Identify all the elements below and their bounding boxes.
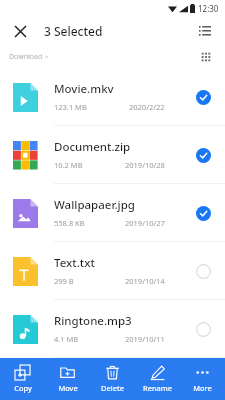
button[interactable]: Delete: [90, 358, 135, 400]
staticText: Text.txt: [54, 255, 95, 271]
button[interactable]: Move: [45, 358, 90, 400]
button[interactable]: Copy: [0, 358, 45, 400]
button[interactable]: Sort: [193, 19, 217, 43]
staticText: Ringtone.mp3: [54, 313, 132, 329]
button[interactable]: Wallpapaer.jpg: [0, 184, 225, 242]
button[interactable]: Close selection: [8, 19, 32, 43]
staticText: Download: [9, 52, 43, 62]
staticText: 123.1 MB: [54, 102, 87, 112]
staticText: 2019/10/11: [125, 334, 165, 344]
staticText: 10.2 MB: [54, 160, 83, 170]
staticText: 2020/2/22: [129, 102, 165, 112]
button[interactable]: Grid view: [195, 46, 217, 68]
staticText: More: [193, 383, 212, 393]
staticText: 299 B: [54, 276, 74, 286]
staticText: 2019/10/28: [125, 160, 165, 170]
button[interactable]: Deselect: [191, 85, 215, 109]
staticText: 2019/10/14: [125, 276, 165, 286]
button[interactable]: Download: [9, 52, 49, 62]
staticText: 4.1 MB: [54, 334, 79, 344]
button[interactable]: Document.zip: [0, 126, 225, 184]
staticText: 2019/10/27: [125, 218, 165, 228]
staticText: 558.8 KB: [54, 218, 85, 228]
button[interactable]: Deselect: [191, 201, 215, 225]
staticText: Copy: [14, 383, 32, 393]
button[interactable]: Movie.mkv: [0, 68, 225, 126]
staticText: Movie.mkv: [54, 81, 114, 97]
staticText: Wallpapaer.jpg: [54, 197, 135, 213]
button[interactable]: Select: [191, 259, 215, 283]
button[interactable]: Text.txt: [0, 242, 225, 300]
button[interactable]: Rename: [135, 358, 180, 400]
staticText: Rename: [143, 383, 172, 393]
staticText: Move: [58, 383, 78, 393]
staticText: Delete: [101, 383, 124, 393]
button[interactable]: Deselect: [191, 143, 215, 167]
staticText: >: [45, 53, 49, 61]
staticText: 3 Selected: [44, 23, 103, 39]
staticText: 12:30: [198, 3, 219, 14]
button[interactable]: More: [180, 358, 225, 400]
button[interactable]: Select: [191, 317, 215, 341]
button[interactable]: Ringtone.mp3: [0, 300, 225, 358]
staticText: Document.zip: [54, 139, 131, 155]
